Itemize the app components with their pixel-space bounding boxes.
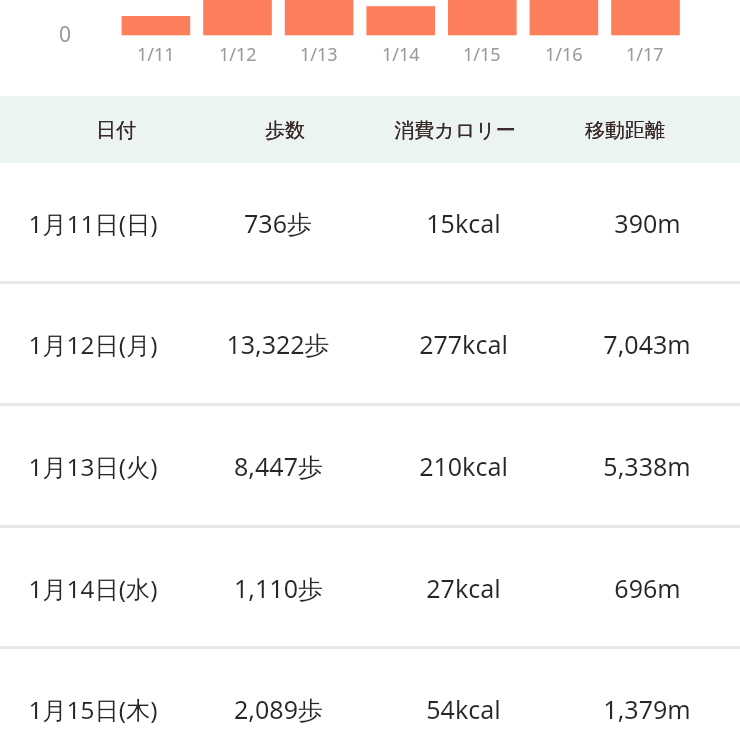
- button[interactable]: [0, 283, 740, 403]
- staticText: 1/15: [463, 42, 501, 67]
- staticText: 1/17: [626, 42, 664, 67]
- staticText: 1月11日(日): [28, 207, 158, 240]
- staticText: 1/16: [545, 42, 583, 67]
- button[interactable]: [0, 96, 740, 163]
- staticText: 1/13: [300, 42, 338, 67]
- staticText: 消費カロリー: [394, 118, 516, 143]
- staticText: 8,447歩: [234, 449, 323, 483]
- staticText: 0: [59, 20, 72, 49]
- staticText: 1/12: [219, 42, 257, 67]
- staticText: 1月15日(木): [28, 693, 158, 726]
- staticText: 1,379m: [603, 692, 691, 726]
- staticText: 54kcal: [426, 692, 501, 726]
- staticText: 1月14日(水): [28, 572, 158, 605]
- button[interactable]: [0, 405, 740, 525]
- staticText: 日付: [96, 118, 136, 143]
- staticText: 移動距離: [585, 118, 665, 143]
- staticText: 消費カロリー: [394, 118, 516, 143]
- staticText: 移動距離: [585, 118, 665, 143]
- staticText: 7,043m: [603, 327, 691, 361]
- staticText: 1/11: [137, 42, 175, 67]
- staticText: 歩数: [265, 118, 305, 143]
- staticText: 5,338m: [603, 449, 691, 483]
- button[interactable]: 週間歩数グラフ: [0, 0, 740, 96]
- staticText: 1月12日(月): [28, 328, 158, 361]
- staticText: 消費カロリー: [394, 118, 516, 143]
- staticText: 277kcal: [419, 327, 508, 361]
- staticText: 210kcal: [419, 449, 508, 483]
- staticText: 736歩: [244, 206, 312, 240]
- staticText: 390m: [614, 206, 681, 240]
- staticText: 27kcal: [426, 571, 501, 605]
- staticText: 1月13日(火): [28, 450, 158, 483]
- staticText: 13,322歩: [226, 327, 330, 361]
- staticText: 2,089歩: [234, 692, 323, 726]
- staticText: 15kcal: [426, 206, 501, 240]
- staticText: 移動距離: [585, 118, 665, 143]
- button[interactable]: [0, 648, 740, 740]
- staticText: 歩数: [265, 118, 305, 143]
- staticText: 日付: [96, 118, 136, 143]
- staticText: 1,110歩: [234, 571, 323, 605]
- staticText: 1/14: [382, 42, 420, 67]
- button[interactable]: [0, 163, 740, 281]
- button[interactable]: [0, 527, 740, 646]
- staticText: 日付: [96, 118, 136, 143]
- staticText: 歩数: [265, 118, 305, 143]
- staticText: 696m: [614, 571, 681, 605]
